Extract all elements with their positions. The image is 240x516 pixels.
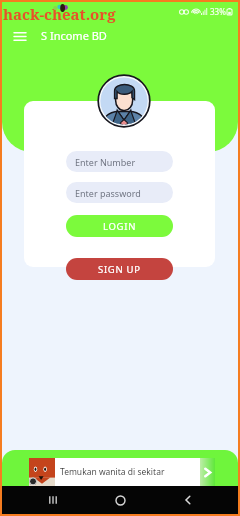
button[interactable]: Open navigation menu bbox=[12, 28, 28, 44]
button[interactable]: Back bbox=[171, 486, 205, 514]
button[interactable]: LOGIN bbox=[66, 215, 173, 237]
button[interactable]: Enter password bbox=[66, 182, 173, 203]
staticText: LOGIN bbox=[103, 220, 137, 233]
staticText: hack-cheat.org bbox=[3, 4, 116, 24]
staticText: S Income BD bbox=[41, 28, 107, 43]
button[interactable]: Open advertisement bbox=[200, 458, 215, 486]
staticText: SIGN UP bbox=[98, 263, 141, 276]
button[interactable]: Enter Number bbox=[66, 151, 173, 172]
staticText: Enter password bbox=[75, 187, 141, 199]
button[interactable]: Home bbox=[103, 486, 137, 514]
staticText: Temukan wanita di sekitar bbox=[60, 466, 165, 478]
button[interactable]: Temukan wanita di sekitar bbox=[2, 450, 238, 486]
button[interactable]: SIGN UP bbox=[66, 258, 173, 280]
staticText: 33% bbox=[210, 6, 226, 17]
button[interactable]: Recent apps bbox=[36, 486, 70, 514]
staticText: Enter Number bbox=[75, 156, 136, 168]
